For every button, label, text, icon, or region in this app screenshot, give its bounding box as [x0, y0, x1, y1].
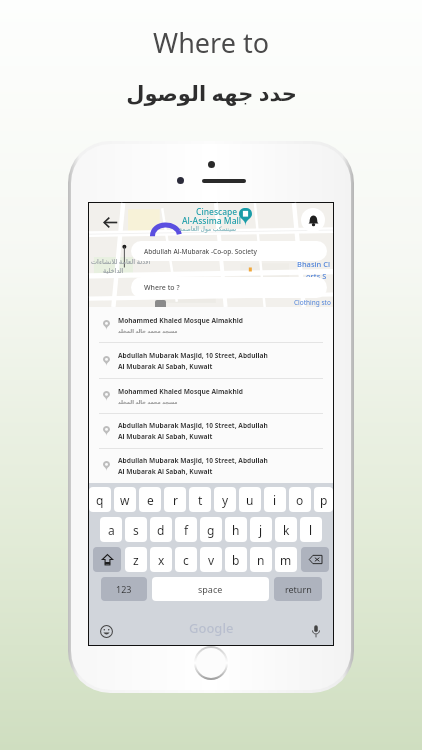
button[interactable]: Abdullah Mubarak Masjid, 10 Street, Abdu…: [89, 449, 333, 483]
staticText: Mohammed Khaled Mosque Almakhld: [118, 387, 243, 396]
staticText: space: [198, 583, 223, 595]
staticText: Abdullah Mubarak Masjid, 10 Street, Abdu…: [118, 456, 268, 465]
button[interactable]: 123: [101, 577, 147, 601]
button[interactable]: space: [152, 577, 269, 601]
button[interactable]: i: [264, 487, 286, 512]
staticText: الادلة العامة للانشاءات: [91, 257, 151, 266]
staticText: Abdullah Mubarak Masjid, 10 Street, Abdu…: [118, 421, 268, 430]
button[interactable]: return: [274, 577, 322, 601]
staticText: الداخلية: [103, 267, 124, 275]
staticText: g: [207, 522, 215, 538]
staticText: حدد جهه الوصول: [126, 79, 297, 108]
button[interactable]: b: [225, 547, 247, 572]
staticText: l: [309, 522, 313, 538]
button[interactable]: Shift: [93, 547, 121, 572]
staticText: Abdullah Mubarak Masjid, 10 Street, Abdu…: [118, 351, 268, 360]
button[interactable]: j: [250, 517, 272, 542]
staticText: orts S: [306, 271, 327, 281]
button[interactable]: e: [139, 487, 161, 512]
button[interactable]: Mohammed Khaled Mosque Almakhld: [89, 379, 333, 413]
button[interactable]: Mohammed Khaled Mosque Almakhld: [89, 307, 333, 342]
staticText: Where to: [153, 24, 269, 61]
button[interactable]: q: [89, 487, 111, 512]
button[interactable]: l: [300, 517, 322, 542]
staticText: f: [184, 522, 189, 538]
button[interactable]: y: [214, 487, 236, 512]
button[interactable]: Abdullah Al-Mubarak -Co-op. Society: [131, 241, 327, 261]
staticText: a: [108, 522, 115, 538]
staticText: z: [133, 552, 139, 568]
staticText: t: [198, 492, 203, 508]
button[interactable]: o: [289, 487, 311, 512]
staticText: d: [157, 522, 165, 538]
staticText: Al-Assima Mall: [182, 215, 242, 227]
button[interactable]: Where to ?: [131, 277, 327, 298]
button[interactable]: Abdullah Mubarak Masjid, 10 Street, Abdu…: [89, 414, 333, 448]
button[interactable]: c: [175, 547, 197, 572]
button[interactable]: s: [125, 517, 147, 542]
staticText: q: [96, 492, 104, 508]
button[interactable]: t: [189, 487, 211, 512]
button[interactable]: u: [239, 487, 261, 512]
button[interactable]: x: [150, 547, 172, 572]
button[interactable]: Voice input: [307, 622, 325, 640]
button[interactable]: k: [275, 517, 297, 542]
staticText: u: [246, 492, 254, 508]
staticText: m: [280, 552, 292, 568]
button[interactable]: a: [100, 517, 122, 542]
button[interactable]: Abdullah Mubarak Masjid, 10 Street, Abdu…: [89, 343, 333, 378]
staticText: e: [147, 492, 154, 508]
button[interactable]: p: [314, 487, 333, 512]
staticText: w: [120, 492, 130, 508]
staticText: y: [222, 492, 229, 508]
staticText: مسجد محمد خالد المخلد: [118, 327, 178, 334]
button[interactable]: Notifications: [301, 208, 325, 232]
staticText: c: [183, 552, 189, 568]
staticText: Al Mubarak Al Sabah, Kuwait: [118, 432, 213, 441]
button[interactable]: g: [200, 517, 222, 542]
button[interactable]: Home: [196, 648, 226, 678]
staticText: s: [133, 522, 139, 538]
button[interactable]: z: [125, 547, 147, 572]
staticText: Abdullah Al-Mubarak -Co-op. Society: [144, 247, 257, 256]
staticText: Where to ?: [144, 283, 180, 293]
button[interactable]: Back: [97, 209, 123, 235]
staticText: b: [232, 552, 240, 568]
button[interactable]: Backspace: [301, 547, 329, 572]
staticText: h: [232, 522, 240, 538]
button[interactable]: f: [175, 517, 197, 542]
staticText: Google: [189, 619, 234, 637]
staticText: Clothing sto: [294, 298, 331, 307]
staticText: مسجد محمد خالد المخلد: [118, 398, 178, 405]
staticText: o: [296, 492, 304, 508]
button[interactable]: m: [275, 547, 297, 572]
staticText: i: [273, 492, 277, 508]
button[interactable]: r: [164, 487, 186, 512]
button[interactable]: Emoji: [97, 622, 115, 640]
staticText: j: [259, 522, 263, 538]
staticText: n: [257, 552, 265, 568]
staticText: p: [320, 492, 328, 508]
staticText: Al Mubarak Al Sabah, Kuwait: [118, 362, 213, 371]
staticText: v: [208, 552, 215, 568]
staticText: x: [158, 552, 165, 568]
button[interactable]: n: [250, 547, 272, 572]
staticText: Bhasin Cl: [297, 259, 331, 269]
staticText: Cinescape: [196, 206, 238, 218]
staticText: Mohammed Khaled Mosque Almakhld: [118, 316, 243, 325]
button[interactable]: d: [150, 517, 172, 542]
button[interactable]: v: [200, 547, 222, 572]
staticText: Al Mubarak Al Sabah, Kuwait: [118, 467, 213, 476]
staticText: سينسكب مول العاصمة: [179, 225, 236, 233]
staticText: return: [285, 583, 312, 595]
button[interactable]: h: [225, 517, 247, 542]
button[interactable]: w: [114, 487, 136, 512]
staticText: 123: [116, 583, 132, 595]
staticText: k: [283, 522, 290, 538]
staticText: r: [173, 492, 178, 508]
